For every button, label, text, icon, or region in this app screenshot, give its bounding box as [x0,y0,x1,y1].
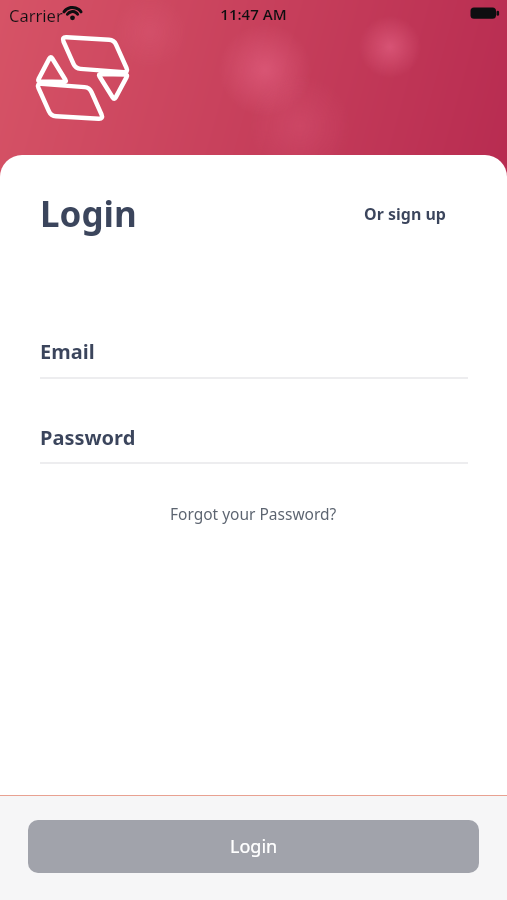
staticText: Login [40,190,137,238]
staticText: Login [230,834,278,859]
staticText: 11:47 AM [0,4,507,24]
staticText: Email [40,338,95,365]
staticText: Password [40,424,136,451]
staticText: Or sign up [364,203,446,225]
button[interactable]: Forgot your Password? [0,503,507,524]
staticText: Carrier [9,4,63,26]
staticText: Forgot your Password? [170,503,337,524]
button[interactable]: Login [28,820,479,873]
button[interactable]: Or sign up [364,203,507,225]
